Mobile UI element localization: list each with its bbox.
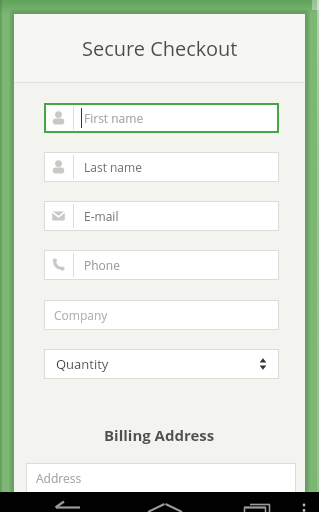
button[interactable]: Quantity bbox=[44, 349, 279, 379]
button[interactable]: Last name bbox=[44, 152, 279, 182]
staticText: First name bbox=[84, 110, 144, 126]
staticText: Company bbox=[54, 307, 108, 323]
button[interactable]: E-mail bbox=[44, 201, 279, 231]
staticText: Address bbox=[36, 470, 82, 486]
button[interactable] bbox=[227, 492, 287, 512]
staticText: Quantity bbox=[56, 355, 109, 373]
staticText: Billing Address bbox=[104, 425, 215, 445]
button[interactable]: Phone bbox=[44, 250, 279, 280]
button[interactable] bbox=[135, 492, 195, 512]
button[interactable] bbox=[294, 492, 319, 512]
button[interactable]: Address bbox=[26, 463, 296, 493]
button[interactable] bbox=[40, 492, 100, 512]
button[interactable]: Company bbox=[44, 300, 279, 330]
staticText: Phone bbox=[84, 257, 120, 273]
button[interactable]: First name bbox=[44, 103, 279, 133]
staticText: Last name bbox=[84, 159, 142, 175]
staticText: Secure Checkout bbox=[82, 35, 238, 62]
staticText: E-mail bbox=[84, 208, 119, 224]
